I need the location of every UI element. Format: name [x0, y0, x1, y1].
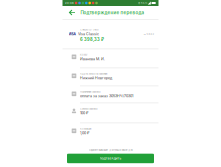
button[interactable]: Назначение платежа [62, 86, 158, 103]
staticText: Сумма платежа [80, 107, 97, 110]
staticText: Кому [80, 53, 87, 56]
button[interactable]: Назад [62, 6, 80, 19]
staticText: Комиссия [80, 127, 91, 130]
staticText: Списать со счета [80, 28, 98, 31]
button[interactable]: Сумма платежа [62, 103, 158, 123]
button[interactable]: ПОДТВЕРДИТЬ [67, 154, 154, 163]
staticText: оплата за заказ 3053НЧ/70301 [80, 94, 133, 98]
button[interactable]: Адрес местоположения [62, 68, 158, 86]
staticText: •• 5862 [143, 32, 154, 36]
button[interactable]: Комиссия [62, 123, 158, 140]
staticText: Адрес местоположения [80, 72, 107, 75]
staticText: Подтверждение перевода [80, 10, 144, 15]
staticText: Назначение платежа [80, 90, 100, 93]
staticText: Иванова М. И. [80, 57, 105, 61]
staticText: 0,1 КБ/с [138, 1, 147, 4]
staticText: Нижний Новгород [80, 76, 112, 80]
staticText: VISA [68, 32, 75, 36]
staticText: Visa Classic [78, 32, 99, 36]
staticText: 1,00 ₽ [80, 131, 90, 135]
staticText: 6 398,33 ₽ [80, 37, 104, 42]
button[interactable]: Кому [62, 49, 158, 68]
staticText: 100 ₽ [80, 111, 89, 115]
button[interactable]: Списать со счета [62, 20, 158, 49]
staticText: Обратите внимание: доступный лимит для [88, 149, 132, 152]
staticText: ПОДТВЕРДИТЬ [99, 157, 121, 160]
staticText: 20:08 [65, 1, 74, 5]
